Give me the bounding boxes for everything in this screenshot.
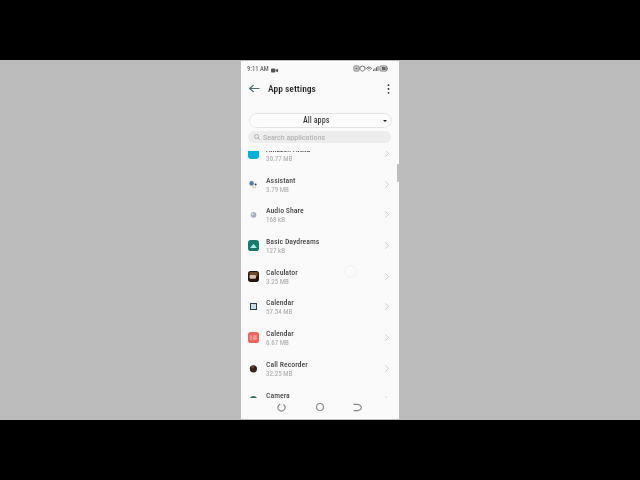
button[interactable]: Recents xyxy=(273,399,289,415)
staticText: 18.45 MB xyxy=(266,401,293,409)
button[interactable]: Basic Daydreams xyxy=(241,230,399,261)
button[interactable]: Home xyxy=(312,399,328,415)
staticText: Camera xyxy=(266,391,290,400)
staticText: Assistant xyxy=(266,176,296,185)
staticText: 168 kB xyxy=(266,216,285,224)
button[interactable]: All apps xyxy=(249,113,392,128)
button[interactable]: Audio Share xyxy=(241,199,399,230)
staticText: 9:11 AM xyxy=(247,65,269,73)
button[interactable]: Calendar xyxy=(241,291,399,322)
button[interactable]: Call Recorder xyxy=(241,353,399,384)
staticText: Calendar xyxy=(266,298,294,307)
staticText: 3.79 MB xyxy=(266,186,289,194)
staticText: Call Recorder xyxy=(266,360,308,369)
staticText: All apps xyxy=(303,115,330,125)
staticText: 57.54 MB xyxy=(266,308,293,316)
staticText: 3.25 MB xyxy=(266,278,289,286)
button[interactable]: Calendar xyxy=(241,322,399,353)
button[interactable]: Camera xyxy=(241,384,399,415)
staticText: 30.77 MB xyxy=(266,155,293,163)
staticText: Search applications xyxy=(263,133,326,142)
button[interactable]: Amazon Alexa xyxy=(241,151,399,169)
button[interactable]: More options xyxy=(380,81,396,97)
staticText: Calculator xyxy=(266,268,298,277)
staticText: Basic Daydreams xyxy=(266,237,320,246)
staticText: Amazon Alexa xyxy=(266,151,311,154)
staticText: 32.25 MB xyxy=(266,370,293,378)
button[interactable]: Calculator xyxy=(241,261,399,292)
button[interactable]: Search applications xyxy=(248,131,391,143)
button[interactable]: Back xyxy=(246,80,262,96)
staticText: Audio Share xyxy=(266,206,304,215)
staticText: 6.67 MB xyxy=(266,339,289,347)
button[interactable]: Assistant xyxy=(241,169,399,200)
staticText: 127 kB xyxy=(266,247,285,255)
staticText: App settings xyxy=(268,83,316,94)
button[interactable]: Back xyxy=(350,399,366,415)
staticText: Calendar xyxy=(266,329,294,338)
